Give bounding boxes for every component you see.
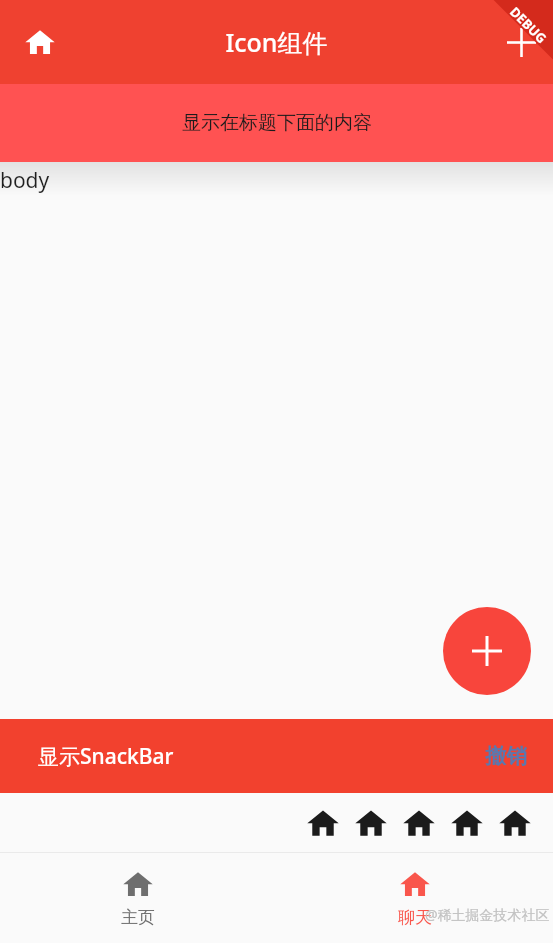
staticText: @稀土掘金技术社区	[425, 905, 550, 924]
staticText: 显示在标题下面的内容	[182, 111, 372, 135]
button[interactable]: 撤销	[477, 733, 535, 779]
staticText: 撤销	[485, 743, 527, 769]
staticText: 显示SnackBar	[38, 742, 174, 771]
staticText: DEBUG	[506, 3, 551, 47]
button[interactable]: Add	[443, 607, 531, 695]
staticText: Icon组件	[225, 25, 328, 59]
button[interactable]: Add	[497, 18, 545, 66]
button[interactable]: 聊天	[276, 853, 553, 943]
button[interactable]: 主页	[0, 853, 276, 943]
button[interactable]: Home	[16, 18, 64, 66]
staticText: 聊天	[398, 907, 432, 928]
staticText: 主页	[121, 907, 155, 928]
staticText: body	[0, 166, 50, 195]
